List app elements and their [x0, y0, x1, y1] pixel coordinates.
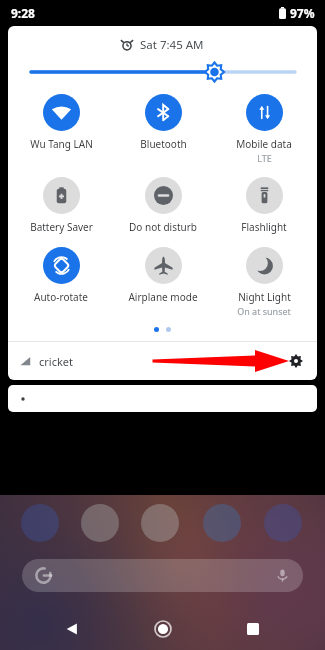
button[interactable]: Do not disturb: [114, 176, 212, 235]
staticText: Airplane mode: [128, 290, 198, 304]
button[interactable]: Settings: [284, 349, 308, 373]
button[interactable]: Night Light: [215, 246, 313, 318]
staticText: Sat 7:45 AM: [140, 37, 204, 53]
button[interactable]: cricket: [20, 354, 73, 369]
button[interactable]: Bluetooth: [114, 93, 212, 152]
button[interactable]: Search: [22, 559, 303, 592]
button[interactable]: Wu Tang LAN: [12, 93, 110, 152]
button[interactable]: Battery Saver: [12, 176, 110, 235]
button[interactable]: Auto-rotate: [12, 246, 110, 305]
staticText: Wu Tang LAN: [30, 137, 93, 151]
staticText: cricket: [39, 354, 73, 369]
button[interactable]: Mobile data: [215, 93, 313, 165]
staticText: Bluetooth: [140, 137, 187, 151]
button[interactable]: Home: [145, 611, 181, 647]
button[interactable]: Airplane mode: [114, 246, 212, 305]
button[interactable]: Back: [54, 611, 90, 647]
staticText: Auto-rotate: [34, 290, 88, 304]
staticText: Flashlight: [241, 220, 287, 234]
staticText: Mobile data: [236, 137, 292, 151]
button[interactable]: [154, 327, 159, 332]
staticText: Do not disturb: [129, 220, 197, 234]
button[interactable]: Recents: [235, 611, 271, 647]
button[interactable]: Flashlight: [215, 176, 313, 235]
staticText: 9:28: [11, 5, 35, 21]
staticText: Night Light: [238, 290, 291, 304]
button[interactable]: [166, 327, 171, 332]
staticText: Battery Saver: [30, 220, 93, 234]
button[interactable]: [8, 385, 317, 412]
staticText: 97%: [290, 5, 315, 21]
staticText: On at sunset: [237, 305, 291, 317]
staticText: LTE: [257, 152, 272, 164]
